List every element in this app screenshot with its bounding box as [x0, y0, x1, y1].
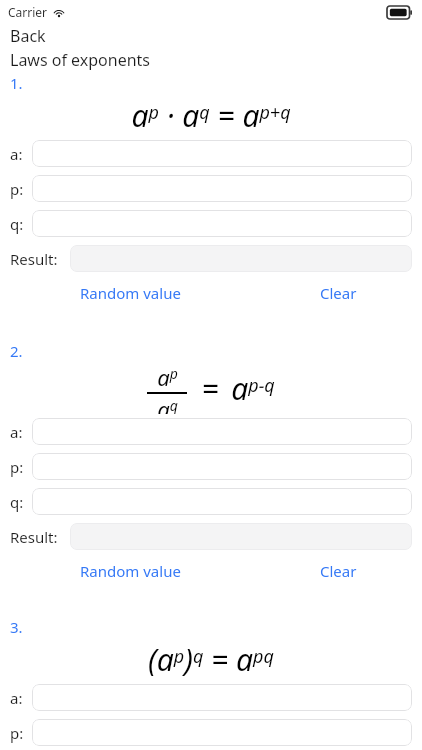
button[interactable] — [32, 210, 412, 237]
staticText: a: — [10, 688, 23, 708]
staticText: q: — [10, 214, 24, 234]
staticText: Carrier — [8, 4, 48, 20]
staticText: 2. — [10, 341, 23, 361]
staticText: = — [201, 368, 219, 409]
staticText: (ap)q = apq — [148, 639, 274, 680]
staticText: ap — [157, 362, 178, 392]
staticText: Result: — [10, 249, 58, 269]
staticText: Result: — [10, 527, 58, 547]
staticText: p: — [10, 723, 24, 743]
staticText: a: — [10, 144, 23, 164]
button[interactable]: Random value — [78, 279, 183, 307]
staticText: Laws of exponents — [10, 49, 151, 71]
button[interactable] — [32, 719, 412, 746]
staticText: Random value — [80, 283, 181, 303]
button[interactable] — [32, 175, 412, 202]
button[interactable] — [32, 418, 412, 445]
button[interactable]: Clear — [318, 279, 359, 307]
button[interactable] — [32, 488, 412, 515]
staticText: Random value — [80, 561, 181, 581]
button[interactable]: Random value — [78, 557, 183, 585]
staticText: p: — [10, 179, 24, 199]
button[interactable]: Clear — [318, 557, 359, 585]
button[interactable] — [32, 453, 412, 480]
staticText: 1. — [10, 73, 23, 93]
button[interactable]: Back — [10, 25, 46, 47]
staticText: ap · aq = ap+q — [131, 95, 291, 136]
staticText: aq — [157, 394, 178, 414]
staticText: Clear — [320, 561, 357, 581]
staticText: q: — [10, 492, 24, 512]
staticText: Clear — [320, 283, 357, 303]
button[interactable] — [32, 140, 412, 167]
staticText: 3. — [10, 617, 23, 637]
button[interactable] — [32, 684, 412, 711]
staticText: p: — [10, 457, 24, 477]
staticText: a: — [10, 422, 23, 442]
staticText: ap−q — [231, 368, 275, 409]
